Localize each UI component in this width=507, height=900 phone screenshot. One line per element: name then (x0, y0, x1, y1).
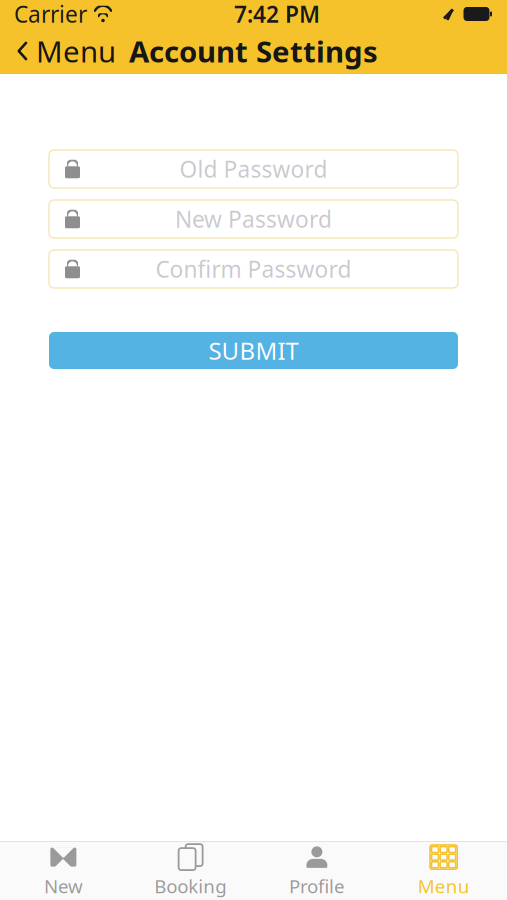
staticText: Booking (154, 874, 226, 898)
staticText: Carrier (14, 0, 87, 29)
staticText: SUBMIT (208, 335, 298, 366)
staticText: Confirm Password (155, 254, 351, 284)
staticText: Profile (289, 874, 345, 898)
staticText: Menu (36, 31, 116, 70)
staticText: 7:42 PM (234, 0, 320, 29)
staticText: Account Settings (129, 31, 378, 70)
button[interactable]: Menu (380, 842, 507, 900)
button[interactable]: SUBMIT (49, 332, 458, 369)
staticText: Menu (418, 874, 470, 898)
staticText: Old Password (179, 154, 327, 184)
staticText: New Password (175, 204, 332, 234)
button[interactable]: Menu (0, 28, 132, 74)
button[interactable]: New (0, 842, 127, 900)
button[interactable]: Profile (253, 842, 380, 900)
button[interactable]: Booking (127, 842, 254, 900)
staticText: New (44, 874, 83, 898)
